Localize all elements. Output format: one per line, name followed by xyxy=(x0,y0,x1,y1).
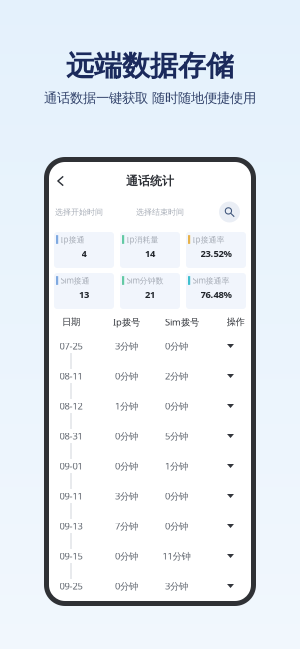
staticText: 1分钟 xyxy=(115,400,138,412)
staticText: 0分钟 xyxy=(115,580,138,592)
staticText: 3分钟 xyxy=(165,580,188,592)
button[interactable]: More options for 09-13 xyxy=(218,511,243,541)
staticText: 0分钟 xyxy=(115,460,138,472)
staticText: 0分钟 xyxy=(115,550,138,562)
staticText: Sim拨号 xyxy=(165,316,199,328)
staticText: 选择结束时间 xyxy=(136,207,184,217)
staticText: 通话数据一键获取 随时随地便捷使用 xyxy=(44,90,256,106)
button[interactable]: More options for 09-01 xyxy=(218,451,243,481)
staticText: 3分钟 xyxy=(115,340,138,352)
staticText: 3分钟 xyxy=(115,490,138,502)
button[interactable]: More options for 07-25 xyxy=(218,331,243,361)
staticText: 选择开始时间 xyxy=(55,207,103,217)
button[interactable]: Back xyxy=(49,162,73,200)
staticText: 07-25 xyxy=(59,340,82,352)
staticText: 09-01 xyxy=(59,460,82,472)
staticText: 08-11 xyxy=(59,370,82,382)
staticText: 2分钟 xyxy=(165,370,188,382)
button[interactable]: More options for 09-25 xyxy=(218,571,243,601)
staticText: 0分钟 xyxy=(165,340,188,352)
staticText: 08-31 xyxy=(59,430,82,442)
staticText: 09-13 xyxy=(59,520,82,532)
staticText: Ip拨号 xyxy=(113,316,140,328)
staticText: 4 xyxy=(81,247,86,260)
staticText: 日期 xyxy=(62,316,80,328)
staticText: 21 xyxy=(145,288,155,301)
staticText: 0分钟 xyxy=(115,430,138,442)
staticText: Sim接通率 xyxy=(193,275,230,286)
button[interactable]: More options for 08-31 xyxy=(218,421,243,451)
staticText: 5分钟 xyxy=(165,430,188,442)
staticText: Sim分钟数 xyxy=(127,275,164,286)
button[interactable]: More options for 09-11 xyxy=(218,481,243,511)
staticText: 09-15 xyxy=(59,550,82,562)
staticText: 0分钟 xyxy=(165,490,188,502)
staticText: 23.52% xyxy=(200,247,231,260)
staticText: Sim接通 xyxy=(61,275,90,286)
staticText: 76.48% xyxy=(200,288,231,301)
staticText: 操作 xyxy=(226,316,244,328)
staticText: 0分钟 xyxy=(165,400,188,412)
staticText: Ip消耗量 xyxy=(127,234,159,245)
staticText: 13 xyxy=(79,288,89,301)
staticText: 通话统计 xyxy=(126,174,174,188)
staticText: 远端数据存储 xyxy=(66,49,234,83)
button[interactable]: More options for 08-12 xyxy=(218,391,243,421)
button[interactable]: More options for 09-15 xyxy=(218,541,243,571)
staticText: 7分钟 xyxy=(115,520,138,532)
staticText: 1分钟 xyxy=(165,460,188,472)
staticText: 09-25 xyxy=(59,580,82,592)
button[interactable]: 选择开始时间 xyxy=(55,200,136,224)
button[interactable]: More options for 08-11 xyxy=(218,361,243,391)
staticText: 0分钟 xyxy=(115,370,138,382)
button[interactable]: 选择结束时间 xyxy=(136,200,210,224)
staticText: Ip接通率 xyxy=(193,234,225,245)
button[interactable]: Search xyxy=(219,201,240,222)
staticText: Ip接通 xyxy=(61,234,85,245)
staticText: 11分钟 xyxy=(162,550,190,562)
staticText: 0分钟 xyxy=(165,520,188,532)
staticText: 14 xyxy=(145,247,155,260)
staticText: 08-12 xyxy=(59,400,82,412)
staticText: 09-11 xyxy=(59,490,82,502)
